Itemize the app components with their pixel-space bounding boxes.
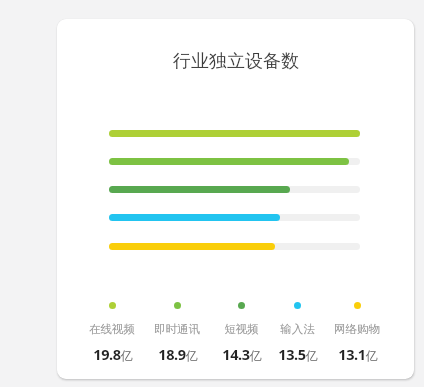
button[interactable]: 在线视频	[72, 298, 152, 318]
button[interactable]: 网络购物	[317, 298, 397, 318]
staticText: 行业独立设备数	[173, 50, 299, 73]
staticText: 短视频	[224, 322, 259, 336]
staticText: 13.1亿	[338, 344, 378, 364]
staticText: 14.3亿	[222, 344, 262, 364]
button[interactable]	[109, 186, 290, 193]
staticText: 18.9亿	[158, 344, 198, 364]
button[interactable]: 短视频	[201, 298, 281, 318]
staticText: 输入法	[280, 322, 315, 336]
button[interactable]	[109, 214, 280, 221]
button[interactable]	[109, 158, 349, 165]
button[interactable]: 输入法	[257, 298, 337, 318]
button[interactable]: 即时通讯	[137, 298, 217, 318]
staticText: 在线视频	[89, 322, 135, 336]
staticText: 即时通讯	[154, 322, 200, 336]
button[interactable]	[109, 243, 275, 250]
button[interactable]	[57, 19, 414, 379]
staticText: 19.8亿	[93, 344, 133, 364]
staticText: 网络购物	[334, 322, 380, 336]
button[interactable]	[109, 130, 360, 137]
staticText: 13.5亿	[278, 344, 318, 364]
